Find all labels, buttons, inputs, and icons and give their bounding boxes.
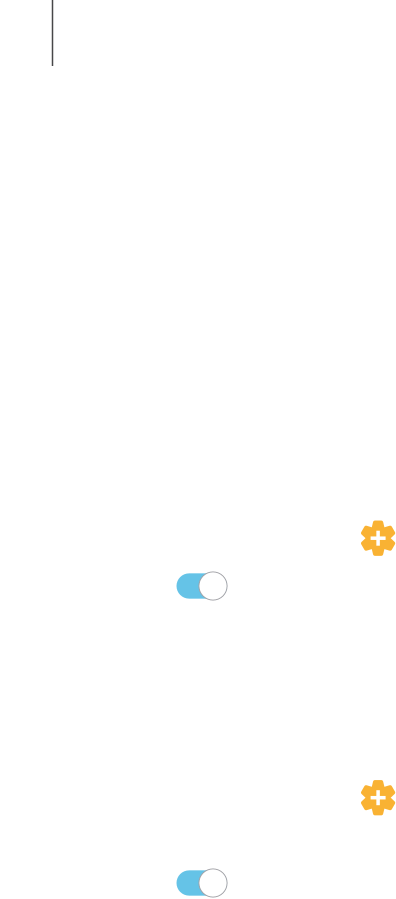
button[interactable]: Add setting <box>360 780 396 815</box>
button[interactable]: Enabled, on <box>176 572 227 600</box>
button[interactable]: Enabled, on <box>176 869 227 897</box>
button[interactable]: Add setting <box>360 521 396 556</box>
